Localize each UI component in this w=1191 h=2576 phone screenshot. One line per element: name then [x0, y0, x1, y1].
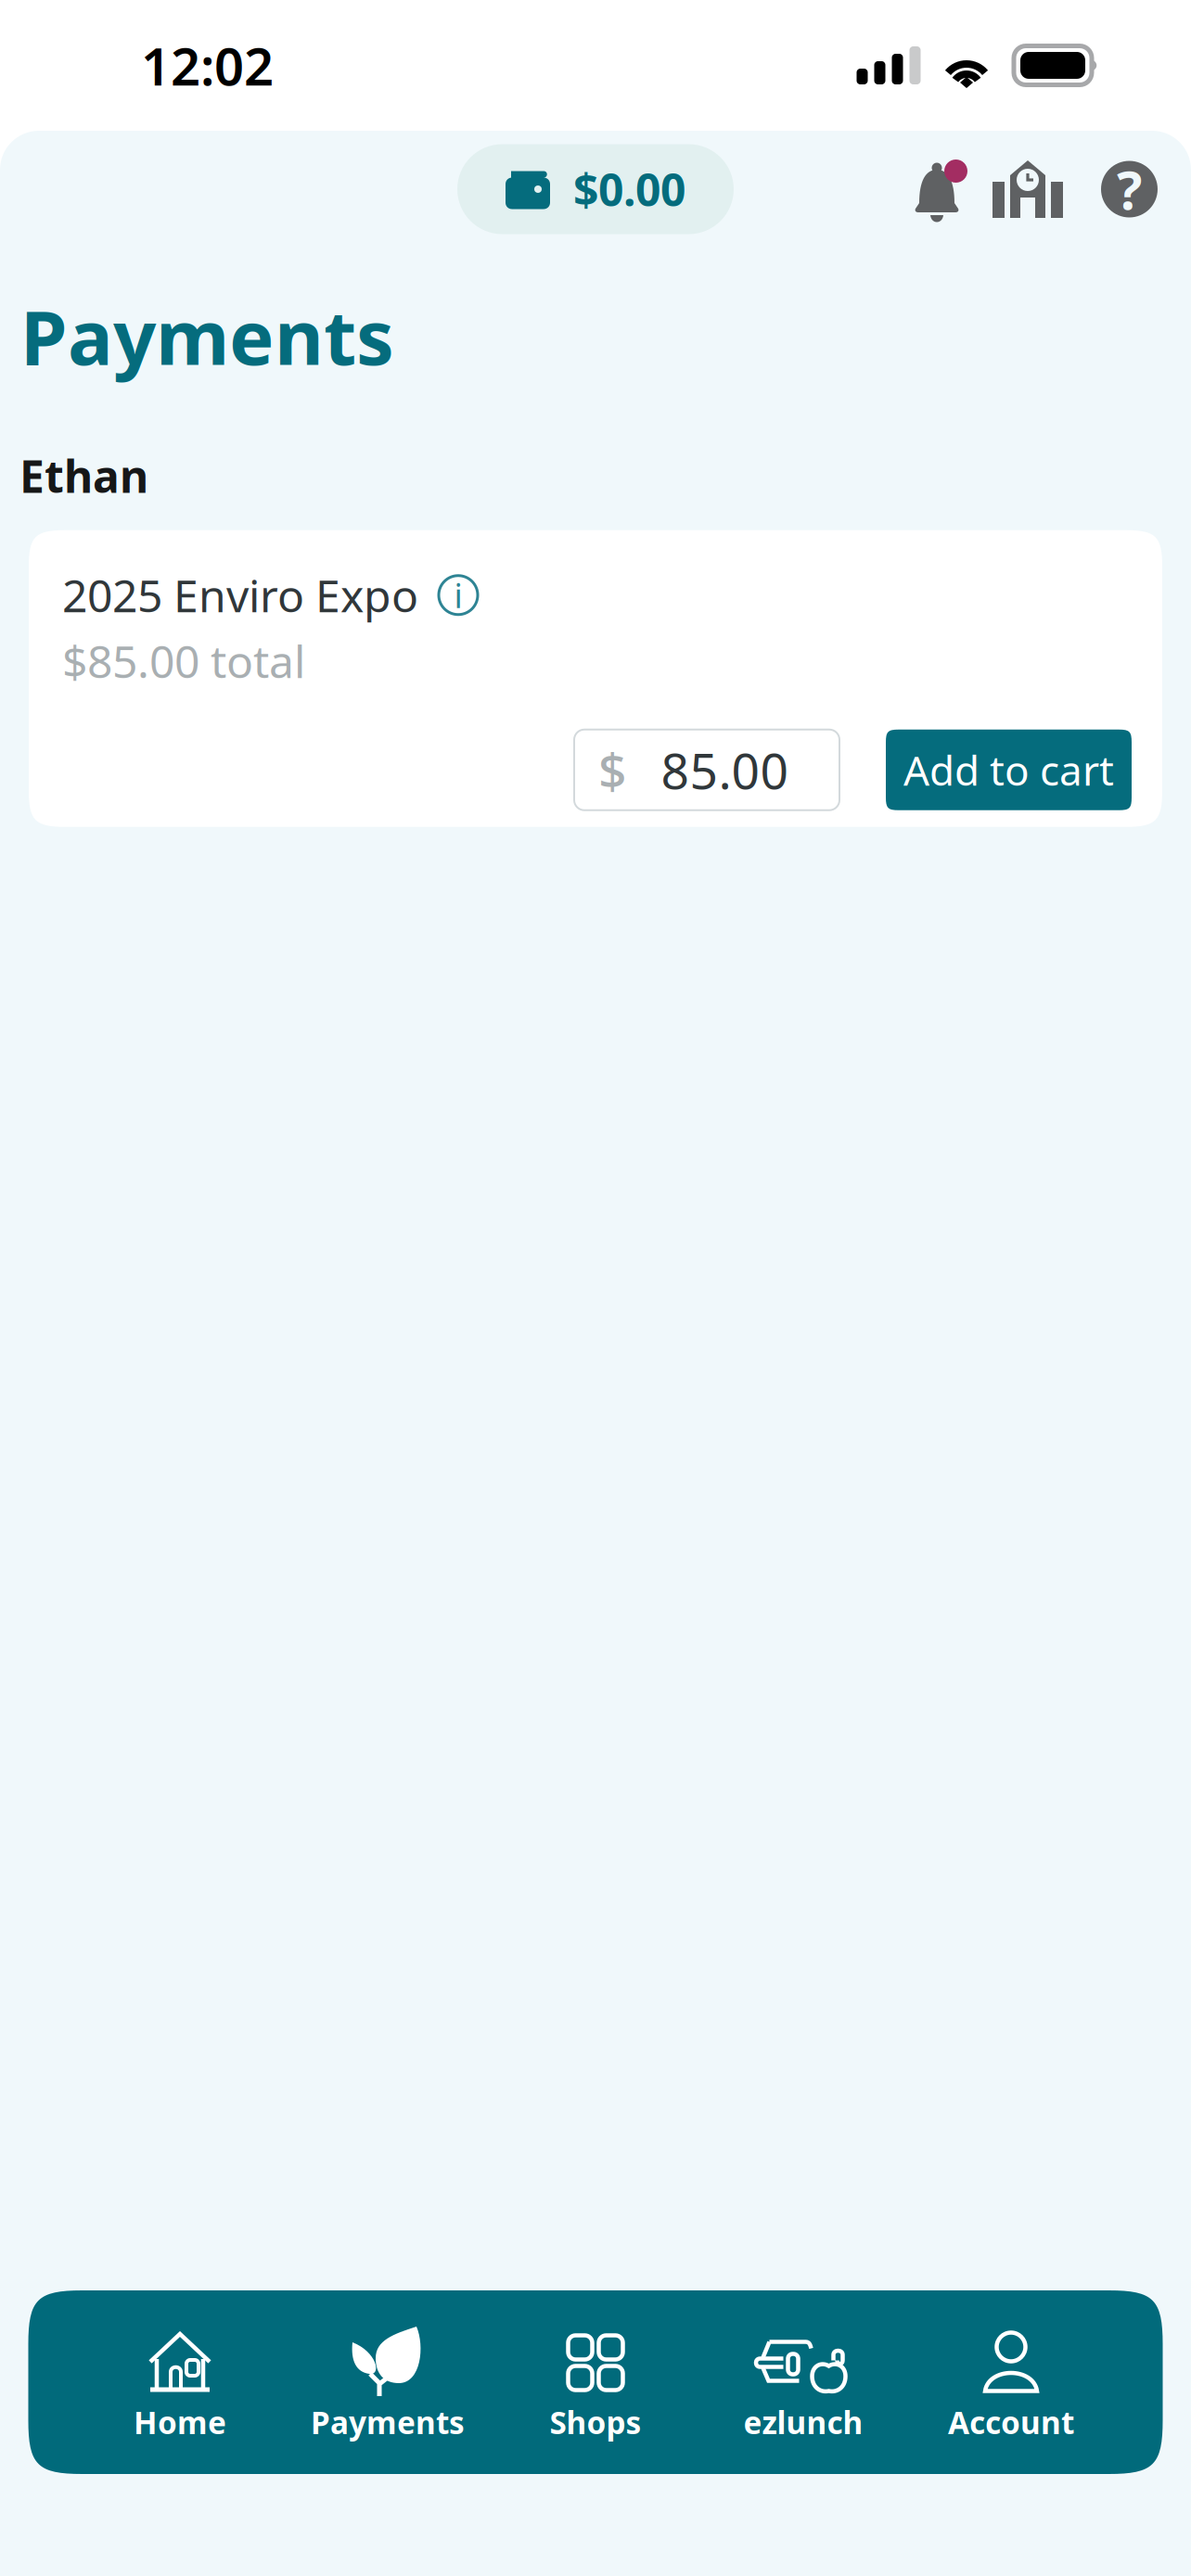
button[interactable]: $0.00	[457, 144, 734, 234]
button[interactable]: Notifications	[915, 160, 959, 218]
staticText: Payments	[20, 286, 394, 386]
staticText: ezlunch	[743, 2402, 863, 2443]
staticText: Ethan	[19, 446, 148, 505]
staticText: Home	[134, 2402, 226, 2443]
staticText: Add to cart	[903, 743, 1114, 797]
button[interactable]: Add to cart	[886, 730, 1132, 810]
button[interactable]: Payments	[284, 2290, 492, 2474]
staticText: ?	[1117, 154, 1142, 224]
staticText: $0.00	[573, 160, 685, 219]
staticText: $	[598, 737, 627, 803]
staticText: 2025 Enviro Expo	[62, 566, 418, 625]
button[interactable]: Home	[76, 2290, 284, 2474]
staticText: $85.00 total	[62, 631, 305, 690]
button[interactable]: School	[992, 160, 1063, 218]
staticText: Payments	[311, 2402, 465, 2443]
staticText: Account	[948, 2402, 1074, 2443]
staticText: 85.00	[661, 737, 789, 803]
staticText: Shops	[550, 2402, 641, 2443]
button[interactable]: Info	[437, 574, 480, 616]
button[interactable]: Help	[1101, 161, 1158, 217]
button[interactable]: Account	[907, 2290, 1115, 2474]
staticText: i	[454, 573, 462, 617]
button[interactable]: ezlunch	[699, 2290, 907, 2474]
button[interactable]: Shops	[492, 2290, 699, 2474]
staticText: 12:02	[141, 31, 274, 100]
